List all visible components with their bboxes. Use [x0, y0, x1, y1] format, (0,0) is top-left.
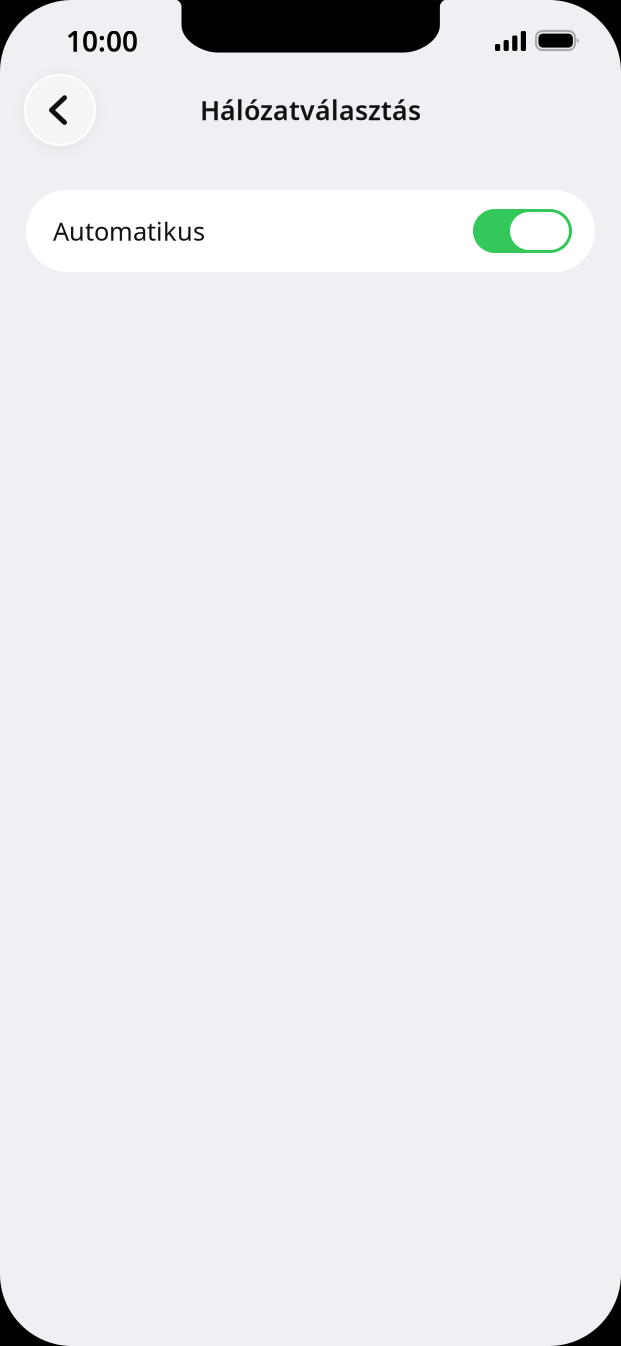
button[interactable]: Back — [25, 75, 95, 145]
button[interactable]: Automatikus — [26, 190, 595, 272]
staticText: Hálózatválasztás — [200, 92, 421, 128]
staticText: 10:00 — [66, 22, 138, 60]
staticText: Automatikus — [53, 214, 205, 248]
